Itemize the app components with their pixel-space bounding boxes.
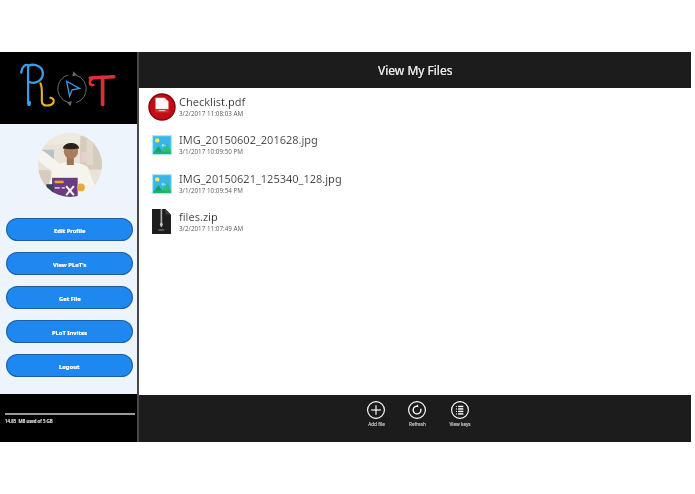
button[interactable]: View PLoT's (7, 253, 132, 274)
staticText: Logout (59, 363, 80, 371)
staticText: Get File (59, 295, 81, 303)
button[interactable]: files.zip (139, 202, 691, 240)
staticText: 3/1/2017 10:09:50 PM (179, 147, 244, 156)
button[interactable]: Get File (7, 287, 132, 308)
staticText: 3/1/2017 10:09:54 PM (179, 186, 244, 195)
button[interactable]: IMG_20150602_201628.jpg (139, 125, 691, 163)
staticText: IMG_20150621_125340_128.jpg (179, 171, 342, 186)
staticText: Refresh (409, 421, 426, 427)
staticText: files.zip (179, 209, 218, 224)
staticText: Edit Profile (54, 227, 86, 235)
button[interactable]: PLoT Invites (7, 321, 132, 342)
staticText: Add file (368, 421, 385, 427)
staticText: 3/2/2017 11:08:03 AM (179, 109, 244, 118)
staticText: Checklist.pdf (179, 94, 246, 109)
staticText: 14.85 MB used of 5 GB (5, 418, 53, 424)
staticText: IMG_20150602_201628.jpg (179, 132, 318, 147)
staticText: View PLoT's (53, 261, 87, 269)
button[interactable]: View keys (440, 401, 480, 427)
staticText: PLoT Invites (52, 329, 88, 337)
button[interactable]: Checklist.pdf (139, 87, 691, 125)
staticText: View keys (449, 421, 471, 427)
button[interactable]: Add file (356, 401, 396, 427)
button[interactable]: Logout (7, 355, 132, 376)
staticText: View My Files (378, 62, 453, 78)
button[interactable]: IMG_20150621_125340_128.jpg (139, 164, 691, 202)
button[interactable]: Profile photo (38, 133, 102, 197)
button[interactable]: Refresh (397, 401, 437, 427)
staticText: 3/2/2017 11:07:49 AM (179, 224, 244, 233)
button[interactable]: Edit Profile (7, 219, 132, 240)
